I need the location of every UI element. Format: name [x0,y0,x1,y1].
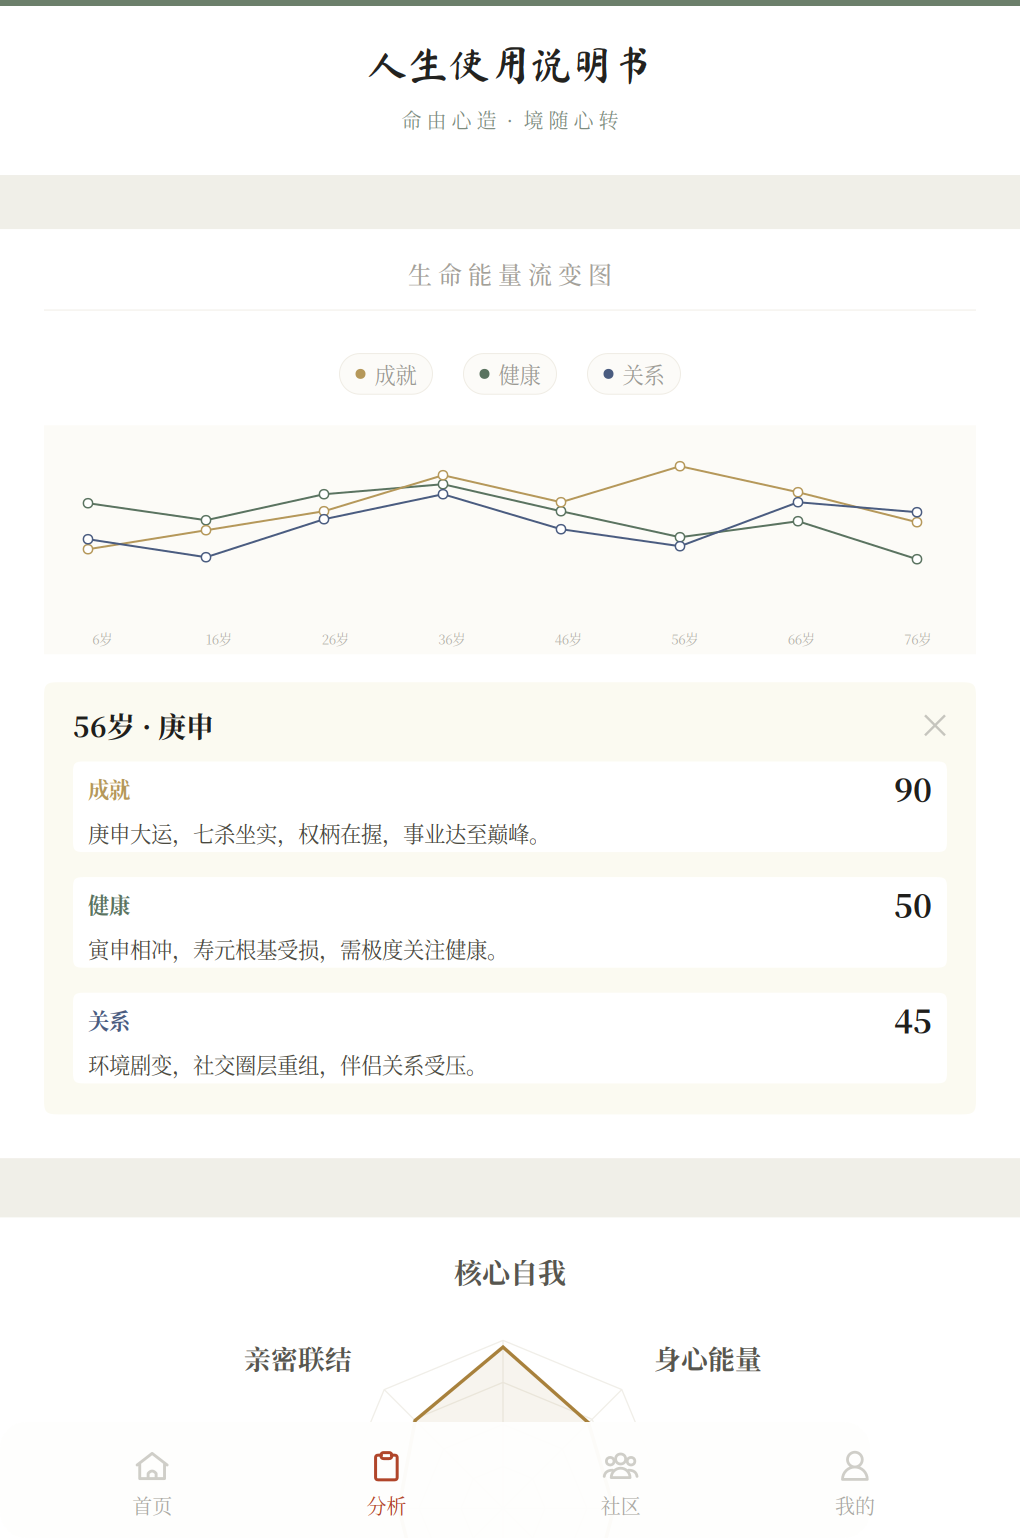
staticText: 庚申大运，七杀坐实，权柄在握，事业达至巅峰。 [88,817,550,848]
staticText: 健康 [88,889,130,919]
staticText: 56岁 [671,629,698,648]
button[interactable]: 健康 [463,354,556,394]
staticText: 我的 [835,1491,875,1520]
staticText: 亲密联结 [244,1339,352,1377]
staticText: 命 由 心 造 · 境 随 心 转 [401,105,618,134]
staticText: 成就 [374,359,416,389]
button[interactable]: 我的 [738,1440,972,1528]
staticText: 首页 [132,1491,172,1520]
button[interactable]: 社区 [503,1440,738,1528]
button[interactable]: 成就 [339,354,432,394]
staticText: 寅申相冲，寿元根基受损，需极度关注健康。 [88,933,508,964]
staticText: 成就 [88,773,130,804]
staticText: 36岁 [438,629,465,648]
staticText: 关系 [622,359,664,389]
staticText: 6岁 [92,629,112,648]
staticText: 56岁 · 庚申 [73,705,214,745]
staticText: 身心能量 [654,1339,762,1377]
staticText: 健康 [498,359,540,389]
staticText: 社区 [601,1491,641,1520]
staticText: 分析 [366,1491,406,1520]
staticText: 90 [894,765,932,811]
staticText: 16岁 [206,629,232,648]
button[interactable]: 关闭 [923,713,947,737]
button[interactable]: 关系 [587,354,680,394]
staticText: 50 [894,881,932,927]
staticText: 76岁 [904,629,931,648]
staticText: 环境剧变，社交圈层重组，伴侣关系受压。 [88,1049,487,1079]
staticText: 46岁 [555,629,582,648]
staticText: 核心自我 [454,1251,566,1292]
button[interactable]: 分析 [269,1440,503,1528]
staticText: 66岁 [788,629,815,648]
button[interactable]: 首页 [35,1440,269,1528]
staticText: 26岁 [322,629,349,648]
staticText: 关系 [88,1004,130,1035]
staticText: 45 [894,997,932,1043]
staticText: 生 命 能 量 流 变 图 [408,256,612,291]
staticText: 人生使用说明书 [366,44,653,85]
